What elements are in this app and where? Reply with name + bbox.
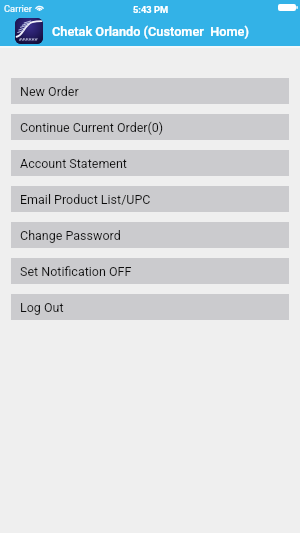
other: Wi-Fi signal (35, 2, 44, 11)
button[interactable]: Change Password (11, 222, 289, 248)
staticText: Email Product List/UPC (20, 192, 151, 207)
button[interactable]: Log Out (11, 294, 289, 320)
staticText: Continue Current Order(0) (20, 120, 164, 135)
button[interactable]: Chetak logo (0, 18, 300, 44)
staticText: Carrier (4, 3, 33, 14)
button[interactable]: New Order (11, 78, 289, 104)
button[interactable]: Continue Current Order(0) (11, 114, 289, 140)
staticText: Change Password (20, 228, 121, 243)
button[interactable]: Set Notification OFF (11, 258, 289, 284)
button[interactable]: Email Product List/UPC (11, 186, 289, 212)
other: Chetak logo (15, 18, 43, 44)
staticText: Account Statement (20, 156, 127, 171)
other: Battery full (278, 4, 298, 11)
button[interactable]: Account Statement (11, 150, 289, 176)
staticText: Chetak Orlando (Customer Home) (52, 24, 249, 39)
staticText: 5:43 PM (133, 4, 169, 15)
staticText: Log Out (20, 300, 64, 315)
staticText: Set Notification OFF (20, 264, 132, 279)
staticText: New Order (20, 84, 79, 99)
